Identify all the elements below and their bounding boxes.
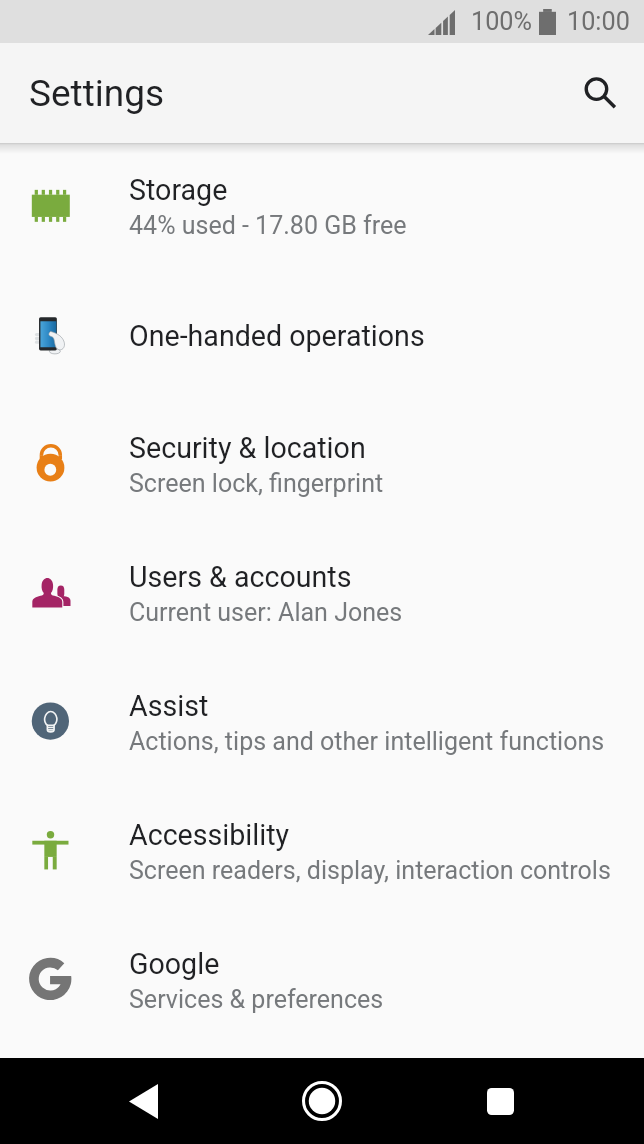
staticText: Settings [29,72,165,115]
button[interactable]: Security & location [0,401,644,530]
staticText: Security & location [129,431,366,465]
staticText: 44% used - 17.80 GB free [129,211,407,240]
staticText: Screen readers, display, interaction con… [129,856,611,885]
staticText: Assist [129,689,209,723]
staticText: Storage [129,173,228,207]
button[interactable]: Users & accounts [0,530,644,659]
staticText: Actions, tips and other intelligent func… [129,727,605,756]
button[interactable]: Google [0,917,644,1046]
staticText: Services & preferences [129,985,384,1014]
staticText: One-handed operations [129,319,425,353]
staticText: Users & accounts [129,560,352,594]
button[interactable]: Storage [0,143,644,272]
staticText: Google [129,947,220,981]
button[interactable]: Back [104,1058,183,1144]
button[interactable]: One-handed operations [0,272,644,401]
button[interactable]: Accessibility [0,788,644,917]
button[interactable]: Assist [0,659,644,788]
staticText: Screen lock, fingerprint [129,469,384,498]
staticText: Current user: Alan Jones [129,598,403,627]
button[interactable]: Search [563,57,635,129]
button[interactable]: Home [282,1058,361,1144]
staticText: 10:00 [567,7,630,37]
button[interactable]: Recent apps [461,1058,540,1144]
staticText: 100% [471,7,532,37]
staticText: Accessibility [129,818,290,852]
